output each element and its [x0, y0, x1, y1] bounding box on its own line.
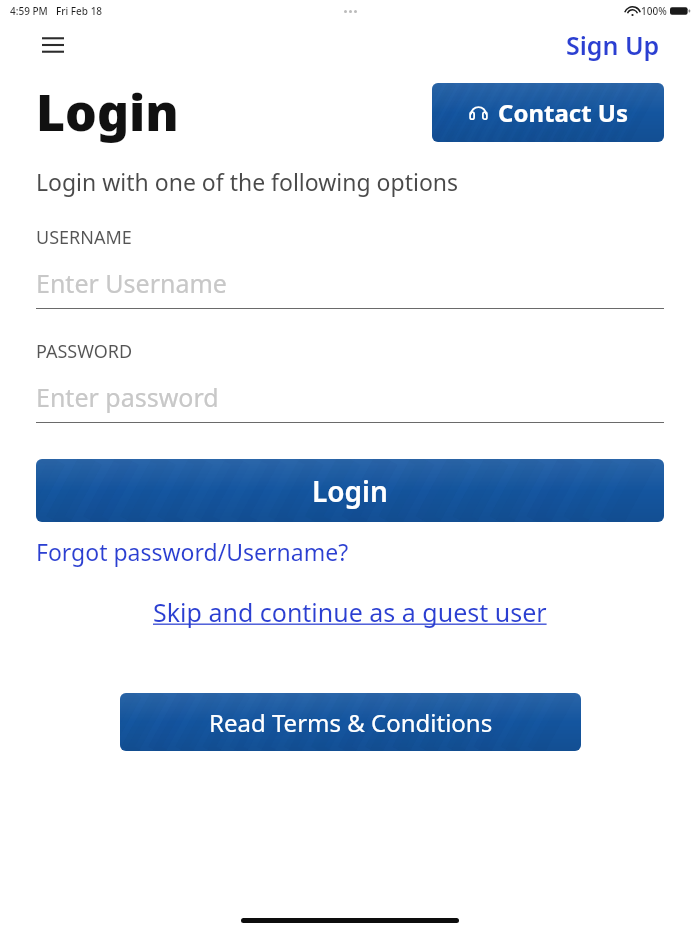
staticText: Enter Username	[36, 266, 227, 300]
staticText: 100%	[641, 4, 667, 18]
button[interactable]: Login	[36, 459, 664, 522]
staticText: Forgot password/Username?	[36, 536, 349, 567]
button[interactable]: Skip and continue as a guest user	[149, 593, 551, 631]
staticText: Contact Us	[498, 96, 629, 129]
staticText: Enter password	[36, 380, 219, 414]
staticText: USERNAME	[36, 225, 132, 250]
staticText: Fri Feb 18	[56, 4, 103, 18]
button[interactable]: Forgot password/Username?	[36, 536, 349, 567]
button[interactable]: Sign Up	[562, 24, 664, 66]
staticText: Login with one of the following options	[36, 166, 459, 197]
button[interactable]: Enter password	[36, 380, 664, 414]
button[interactable]: Contact Us	[432, 83, 664, 142]
button[interactable]: Menu	[36, 28, 70, 62]
staticText: PASSWORD	[36, 339, 133, 364]
staticText: Sign Up	[566, 28, 660, 62]
button[interactable]: Read Terms & Conditions	[120, 693, 581, 751]
staticText: Skip and continue as a guest user	[153, 595, 547, 629]
staticText: Read Terms & Conditions	[209, 706, 493, 739]
staticText: Login	[36, 78, 179, 146]
staticText: 4:59 PM	[10, 4, 48, 18]
staticText: Login	[312, 472, 388, 510]
button[interactable]: Enter Username	[36, 266, 664, 300]
